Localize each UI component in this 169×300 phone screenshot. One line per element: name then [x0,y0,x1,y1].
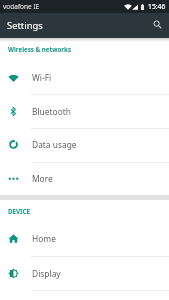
staticText: Home [32,233,56,244]
staticText: 15:46 [148,2,166,11]
button[interactable]: Data usage [0,128,169,161]
staticText: DEVICE [8,207,30,215]
button[interactable]: Search [145,13,169,38]
staticText: Wi-Fi [32,72,52,83]
staticText: Wireless & networks [8,45,72,53]
button[interactable]: Sound [0,290,169,300]
button[interactable]: Bluetooth [0,94,169,128]
button[interactable]: More [0,162,169,195]
staticText: Data usage [32,139,77,150]
staticText: Bluetooth [32,106,71,117]
staticText: vodafone IE [3,2,40,11]
button[interactable]: Display [0,256,169,290]
button[interactable]: Home [0,221,169,256]
staticText: Display [32,268,61,279]
staticText: Settings [7,19,43,32]
staticText: More [32,173,53,184]
button[interactable]: Wi-Fi [0,60,169,95]
